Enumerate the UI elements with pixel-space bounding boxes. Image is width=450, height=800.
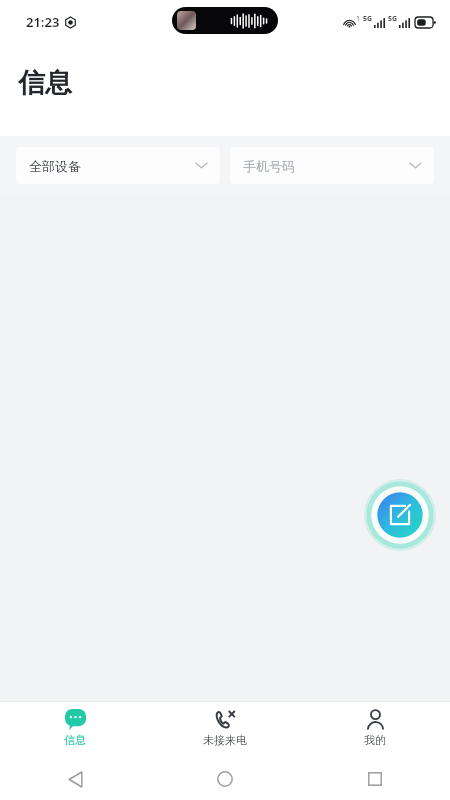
button[interactable]: 我的 bbox=[300, 702, 450, 747]
button[interactable]: 新建信息 bbox=[364, 479, 436, 551]
staticText: 5G bbox=[388, 14, 398, 24]
staticText: 1 bbox=[356, 14, 361, 24]
staticText: 全部设备 bbox=[29, 158, 81, 174]
staticText: 信息 bbox=[18, 66, 72, 100]
staticText: 我的 bbox=[364, 733, 386, 747]
staticText: 未接来电 bbox=[203, 733, 247, 747]
button[interactable]: 返回 bbox=[58, 762, 92, 796]
staticText: 手机号码 bbox=[243, 158, 295, 174]
button[interactable]: 全部设备 bbox=[16, 147, 220, 184]
button[interactable]: 主页 bbox=[208, 762, 242, 796]
staticText: 信息 bbox=[64, 733, 86, 747]
staticText: 5G bbox=[363, 14, 373, 24]
button[interactable]: 最近任务 bbox=[358, 762, 392, 796]
button[interactable]: 信息 bbox=[0, 702, 150, 747]
button[interactable]: 未接来电 bbox=[150, 702, 300, 747]
button[interactable]: 手机号码 bbox=[230, 147, 434, 184]
staticText: 21:23 bbox=[26, 13, 60, 31]
